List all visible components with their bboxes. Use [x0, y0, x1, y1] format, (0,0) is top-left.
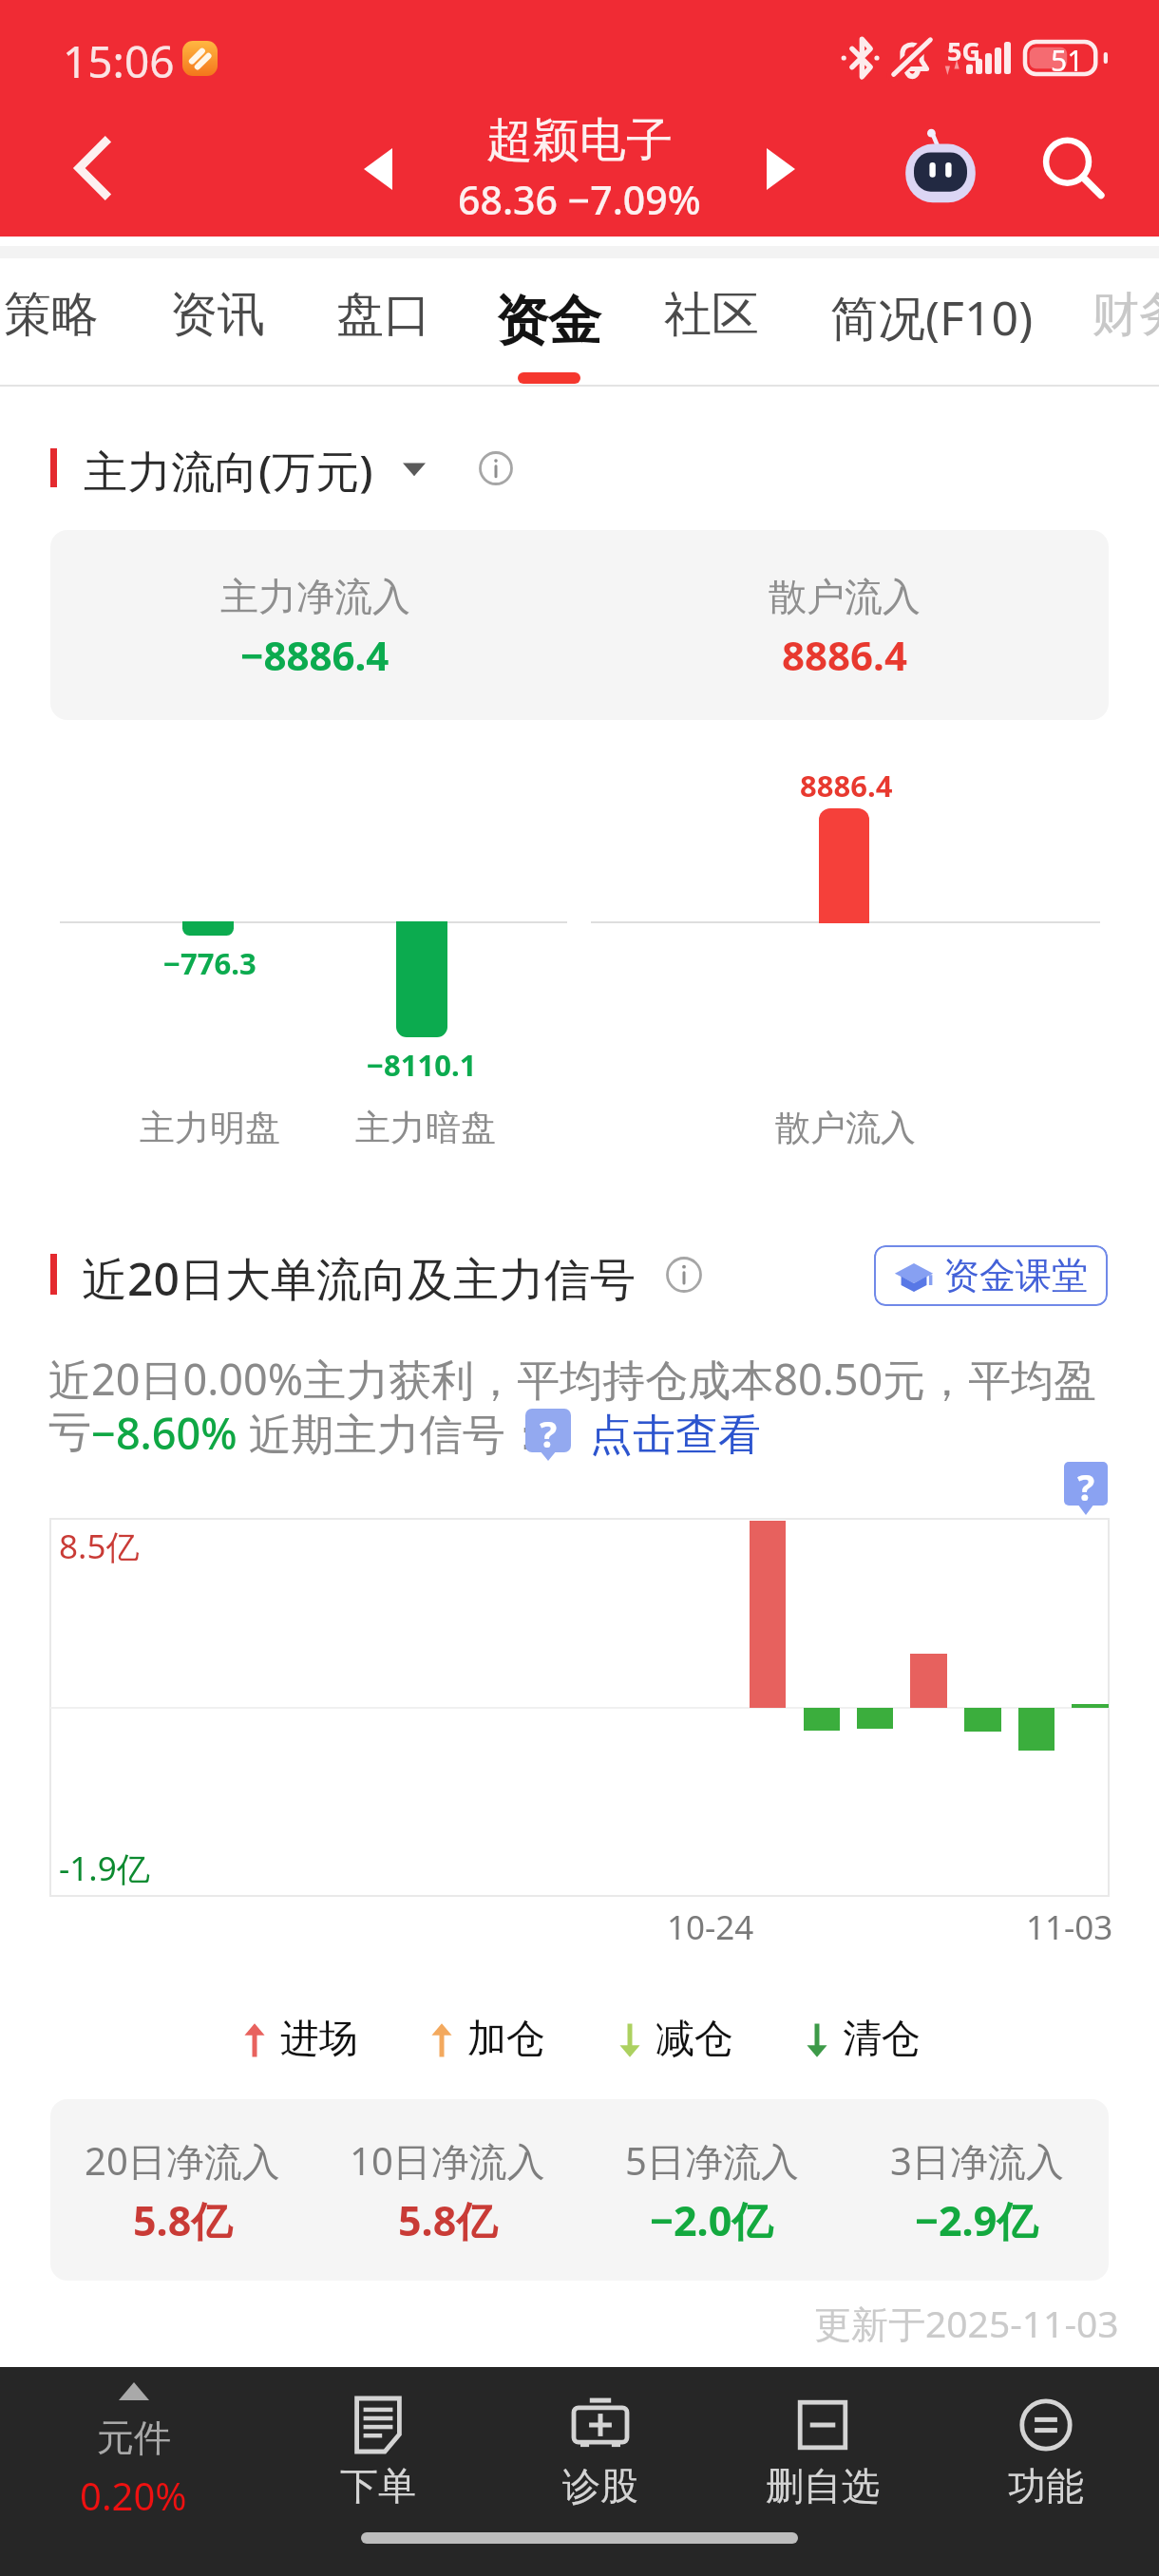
- staticText: 减仓: [655, 2015, 733, 2064]
- button[interactable]: Next stock: [733, 122, 828, 217]
- staticText: 5.8亿: [398, 2192, 498, 2248]
- staticText: 简况(F10): [830, 285, 1034, 350]
- staticText: -1.9亿: [59, 1846, 150, 1891]
- staticText: 15:06: [63, 31, 175, 91]
- button[interactable]: 下单: [274, 2367, 483, 2529]
- staticText: 删自选: [766, 2462, 880, 2510]
- button[interactable]: 功能: [941, 2367, 1150, 2529]
- staticText: ?: [1077, 1462, 1095, 1506]
- staticText: −2.0亿: [650, 2192, 773, 2248]
- staticText: 3日净流入: [890, 2134, 1064, 2187]
- staticText: 盘口: [336, 285, 431, 345]
- staticText: 资金: [495, 288, 601, 355]
- button[interactable]: 资金课堂: [874, 1245, 1108, 1306]
- staticText: 20日净流入: [85, 2134, 280, 2187]
- button[interactable]: 点击查看: [590, 1409, 761, 1463]
- staticText: ?: [540, 1409, 558, 1452]
- button[interactable]: 清仓: [806, 2016, 921, 2065]
- staticText: 社区: [664, 285, 759, 345]
- button[interactable]: 主力净流入: [50, 530, 1109, 720]
- staticText: 8.5亿: [59, 1524, 140, 1569]
- staticText: −776.3: [163, 943, 256, 983]
- staticText: 5日净流入: [625, 2134, 799, 2187]
- staticText: 0.20%: [80, 2470, 187, 2521]
- button[interactable]: 加仓: [430, 2016, 545, 2065]
- button[interactable]: 10日净流入: [315, 2099, 579, 2281]
- button[interactable]: 策略: [4, 268, 99, 367]
- staticText: 散户流入: [769, 573, 921, 620]
- staticText: −8886.4: [240, 628, 389, 682]
- button[interactable]: AI assistant: [889, 118, 992, 220]
- staticText: 资讯: [170, 285, 265, 345]
- staticText: 5G: [947, 33, 980, 68]
- staticText: 10日净流入: [350, 2134, 545, 2187]
- staticText: 财务: [1092, 285, 1159, 345]
- staticText: 超颖电子: [486, 111, 673, 170]
- staticText: 主力净流入: [220, 573, 410, 620]
- button[interactable]: Help: [1064, 1462, 1108, 1506]
- staticText: 8886.4: [800, 766, 893, 805]
- button[interactable]: 进场: [243, 2016, 358, 2065]
- staticText: 加仓: [467, 2015, 545, 2064]
- staticText: −2.9亿: [915, 2192, 1038, 2248]
- staticText: 10-24: [667, 1904, 754, 1950]
- staticText: 功能: [1008, 2462, 1084, 2510]
- staticText: −8110.1: [367, 1045, 477, 1085]
- button[interactable]: 3日净流入: [845, 2099, 1109, 2281]
- staticText: 资金课堂: [943, 1253, 1088, 1298]
- staticText: 主力流向(万元): [84, 441, 373, 501]
- staticText: 11-03: [1026, 1904, 1113, 1950]
- staticText: 近20日大单流向及主力信号: [82, 1247, 636, 1310]
- staticText: 主力暗盘: [355, 1106, 496, 1150]
- staticText: 诊股: [562, 2462, 638, 2510]
- staticText: 清仓: [843, 2015, 921, 2064]
- staticText: −8.60%: [91, 1404, 237, 1461]
- button[interactable]: 5日净流入: [579, 2099, 844, 2281]
- button[interactable]: 资金: [495, 268, 601, 367]
- button[interactable]: 盘口: [336, 268, 431, 367]
- staticText: 主力明盘: [140, 1106, 280, 1150]
- button[interactable]: 20日净流入: [50, 2099, 314, 2281]
- button[interactable]: Previous stock: [331, 122, 426, 217]
- staticText: 近20日0.00%主力获利，平均持仓成本80.50元，平均盈: [48, 1350, 1097, 1408]
- button[interactable]: Search: [1021, 117, 1124, 219]
- button[interactable]: 社区: [664, 268, 759, 367]
- staticText: 8886.4: [782, 628, 907, 682]
- staticText: 68.36 −7.09%: [458, 173, 701, 226]
- staticText: 散户流入: [775, 1106, 916, 1150]
- button[interactable]: 资讯: [170, 268, 265, 367]
- button[interactable]: 诊股: [496, 2367, 705, 2529]
- button[interactable]: 财务: [1092, 268, 1159, 367]
- button[interactable]: 简况(F10): [830, 268, 1034, 367]
- staticText: 策略: [4, 285, 99, 345]
- staticText: 元件: [97, 2415, 171, 2461]
- button[interactable]: Info: [666, 1257, 702, 1293]
- button[interactable]: Back: [33, 110, 147, 224]
- button[interactable]: 元件: [28, 2367, 237, 2548]
- button[interactable]: Info: [479, 451, 513, 485]
- staticText: 51: [1051, 41, 1084, 73]
- staticText: 5.8亿: [133, 2192, 233, 2248]
- staticText: 进场: [280, 2015, 358, 2064]
- staticText: 下单: [340, 2462, 416, 2510]
- staticText: 近期主力信号：: [237, 1404, 548, 1461]
- staticText: 更新于2025-11-03: [814, 2298, 1119, 2348]
- button[interactable]: Help: [525, 1409, 571, 1452]
- staticText: 亏: [48, 1406, 91, 1460]
- button[interactable]: 删自选: [718, 2367, 927, 2529]
- button[interactable]: 减仓: [618, 2016, 733, 2065]
